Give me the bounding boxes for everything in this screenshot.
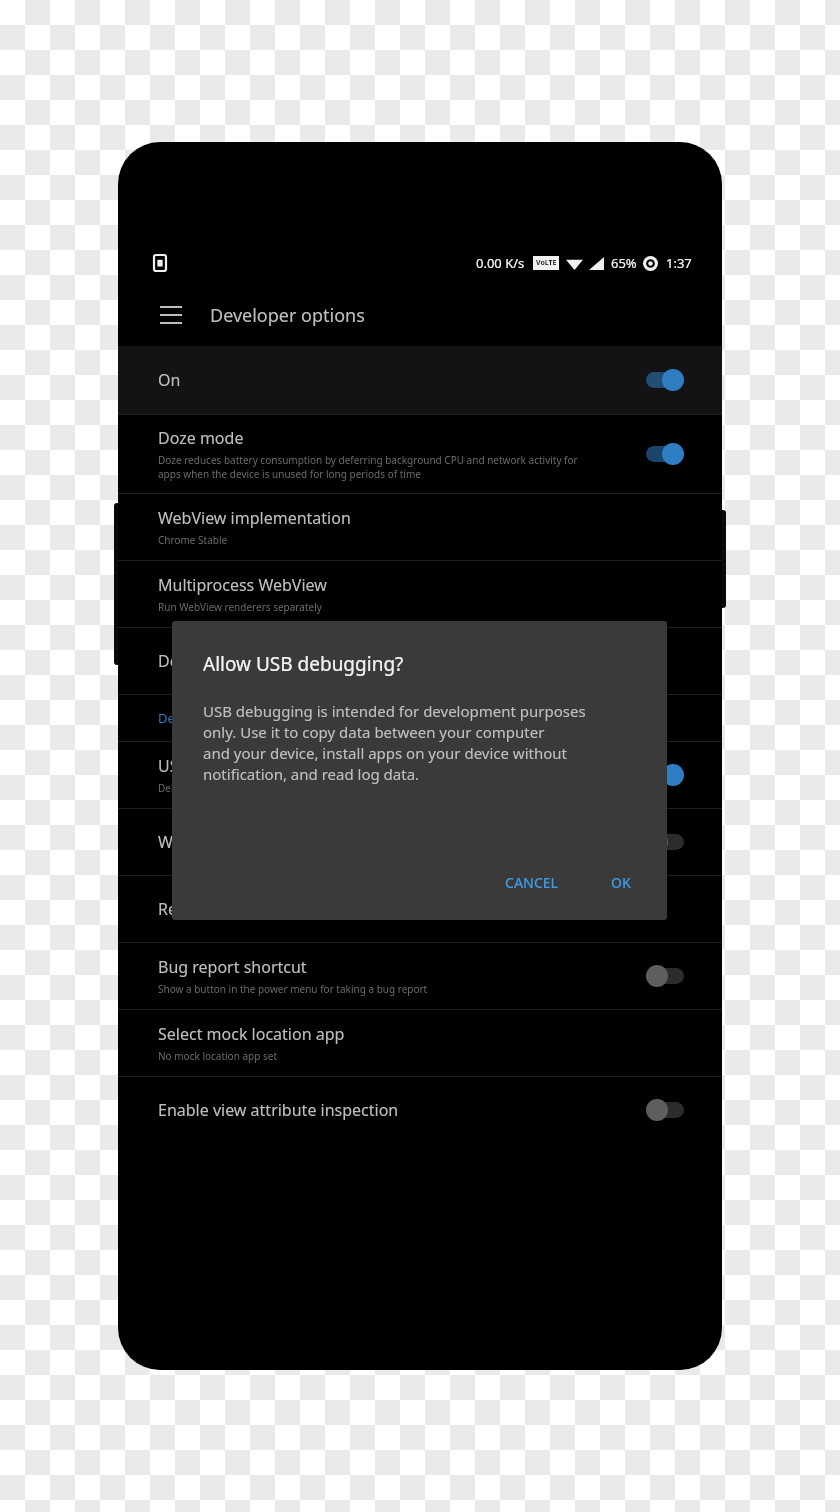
staticText: OK (611, 873, 631, 892)
staticText: VoLTE (536, 258, 557, 268)
staticText: Chrome Stable (158, 533, 228, 547)
staticText: Show a button in the power menu for taki… (158, 982, 428, 996)
button[interactable]: USB debugging (118, 742, 722, 808)
button[interactable]: Revoke USB debugging authorizations (118, 876, 722, 942)
staticText: Allow USB debugging? (203, 651, 404, 677)
button[interactable]: CANCEL (493, 865, 571, 900)
button[interactable]: Debugging (118, 695, 722, 741)
button[interactable]: Toggle off (646, 1099, 684, 1121)
button[interactable]: Open navigation menu (148, 292, 194, 338)
staticText: Run WebView renderers separately (158, 600, 322, 614)
staticText: 1:37 (666, 254, 692, 272)
staticText: 0.00 K/s (476, 254, 525, 272)
button[interactable]: On (118, 346, 722, 414)
button[interactable]: Toggle on (646, 443, 684, 465)
staticText: CANCEL (505, 873, 559, 892)
button[interactable]: Doze mode (118, 415, 722, 493)
button[interactable]: Enable view attribute inspection (118, 1077, 722, 1143)
staticText: Multiprocess WebView (158, 574, 327, 596)
staticText: USB debugging (158, 755, 276, 777)
staticText: Doze reduces battery consumption by defe… (158, 453, 578, 481)
button[interactable]: Toggle on (646, 764, 684, 786)
button[interactable]: WebView implementation (118, 494, 722, 560)
button[interactable]: Toggle off (646, 831, 684, 853)
button[interactable]: Toggle on (646, 369, 684, 391)
staticText: WebView implementation (158, 507, 351, 529)
button[interactable]: Demo mode (118, 628, 722, 694)
staticText: 65% (611, 254, 637, 272)
staticText: Demo mode (158, 650, 252, 672)
button[interactable]: Multiprocess WebView (118, 561, 722, 627)
staticText: Select mock location app (158, 1023, 345, 1045)
staticText: USB debugging is intended for developmen… (203, 701, 586, 785)
button[interactable]: Select mock location app (118, 1010, 722, 1076)
staticText: No mock location app set (158, 1049, 277, 1063)
staticText: Revoke USB debugging authorizations (158, 898, 447, 920)
staticText: Doze mode (158, 427, 244, 449)
button[interactable]: Wireless ADB debugging (118, 809, 722, 875)
staticText: Enable view attribute inspection (158, 1099, 399, 1121)
button[interactable]: Bug report shortcut (118, 943, 722, 1009)
staticText: Bug report shortcut (158, 956, 307, 978)
button[interactable]: OK (599, 865, 643, 900)
staticText: On (158, 369, 181, 391)
staticText: Wireless ADB debugging (158, 831, 344, 853)
staticText: Developer options (210, 303, 365, 328)
staticText: Debugging (158, 709, 227, 727)
button[interactable]: Toggle off (646, 965, 684, 987)
staticText: Debug mode when USB is connected (158, 781, 332, 795)
